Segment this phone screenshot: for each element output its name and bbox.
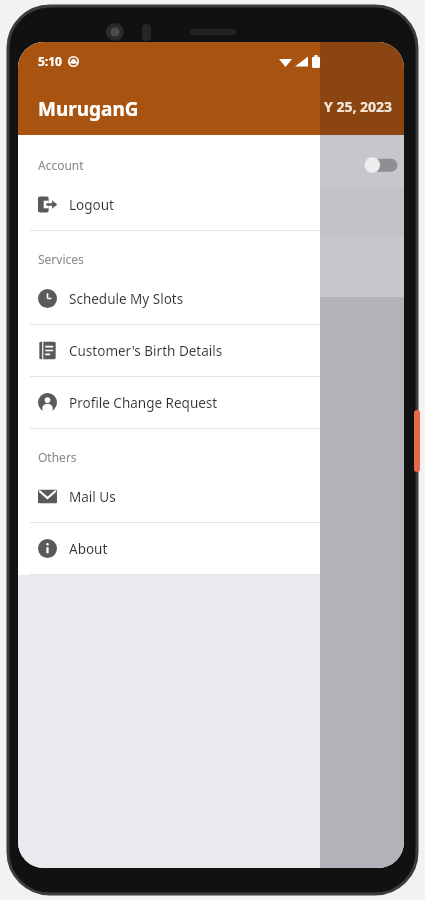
staticText: Mail Us — [69, 488, 116, 506]
button[interactable]: Schedule My Slots — [18, 273, 320, 324]
button[interactable]: Toggle — [358, 152, 400, 178]
staticText: About — [69, 540, 108, 558]
staticText: Y 25, 2023 — [324, 97, 393, 116]
staticText: Logout — [69, 196, 114, 214]
button[interactable]: Profile Change Request — [18, 377, 320, 428]
button[interactable]: Logout — [18, 179, 320, 230]
button[interactable]: About — [18, 523, 320, 574]
staticText: Customer's Birth Details — [69, 342, 223, 360]
button[interactable]: Customer's Birth Details — [18, 325, 320, 376]
staticText: MuruganG — [38, 96, 139, 122]
staticText: Schedule My Slots — [69, 290, 184, 308]
staticText: Others — [38, 449, 77, 465]
staticText: 5:10 — [38, 53, 62, 69]
staticText: Services — [38, 251, 84, 267]
staticText: Account — [38, 157, 84, 173]
staticText: Profile Change Request — [69, 394, 218, 412]
button[interactable]: Mail Us — [18, 471, 320, 522]
